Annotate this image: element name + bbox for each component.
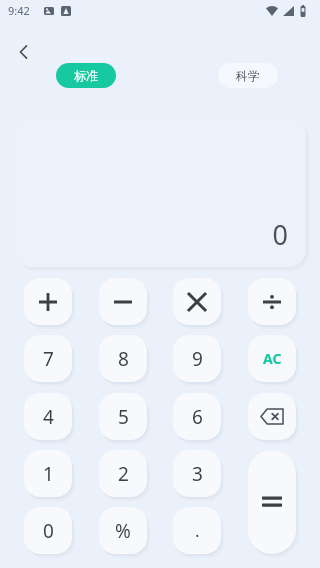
- staticText: AC: [263, 349, 282, 368]
- staticText: 2: [118, 461, 129, 487]
- button[interactable]: 6: [173, 393, 221, 440]
- staticText: 5: [118, 404, 129, 430]
- button[interactable]: Equals: [248, 450, 296, 554]
- button[interactable]: .: [173, 507, 221, 554]
- staticText: .: [195, 519, 200, 542]
- button[interactable]: 5: [99, 393, 147, 440]
- button[interactable]: 4: [24, 393, 72, 440]
- staticText: 6: [192, 404, 203, 430]
- staticText: 1: [43, 461, 54, 487]
- button[interactable]: 0: [14, 117, 306, 267]
- staticText: 0: [272, 216, 288, 253]
- staticText: 标准: [74, 68, 98, 83]
- staticText: 8: [118, 346, 129, 372]
- staticText: %: [115, 518, 131, 544]
- staticText: 3: [192, 461, 203, 487]
- button[interactable]: 3: [173, 450, 221, 497]
- button[interactable]: 标准: [56, 63, 116, 88]
- button[interactable]: 8: [99, 335, 147, 382]
- button[interactable]: 1: [24, 450, 72, 497]
- staticText: 0: [43, 518, 54, 544]
- button[interactable]: 9: [173, 335, 221, 382]
- staticText: 7: [43, 346, 54, 372]
- staticText: 科学: [236, 68, 260, 83]
- button[interactable]: 科学: [218, 63, 278, 88]
- button[interactable]: 0: [24, 507, 72, 554]
- button[interactable]: 2: [99, 450, 147, 497]
- button[interactable]: AC: [248, 335, 296, 382]
- button[interactable]: %: [99, 507, 147, 554]
- staticText: 9:42: [8, 3, 30, 18]
- staticText: 9: [192, 346, 203, 372]
- button[interactable]: Minus: [99, 278, 147, 325]
- button[interactable]: Multiply: [173, 278, 221, 325]
- button[interactable]: 7: [24, 335, 72, 382]
- button[interactable]: Backspace: [248, 393, 296, 440]
- button[interactable]: Divide: [248, 278, 296, 325]
- button[interactable]: Back: [6, 34, 42, 70]
- staticText: 4: [43, 404, 54, 430]
- button[interactable]: Plus: [24, 278, 72, 325]
